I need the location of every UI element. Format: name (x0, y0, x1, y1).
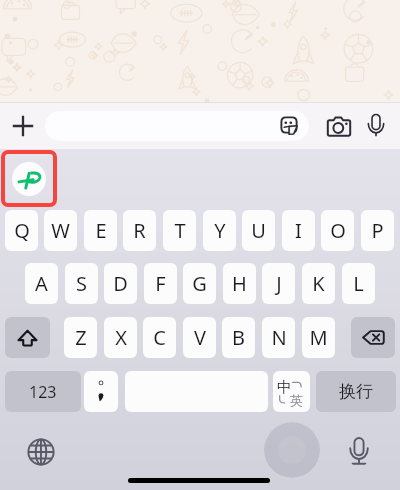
button[interactable]: W (44, 210, 77, 251)
staticText: Y (214, 217, 226, 244)
button[interactable]: T (163, 210, 196, 251)
staticText: F (155, 270, 166, 297)
button[interactable]: C (143, 317, 176, 358)
button[interactable]: J (262, 263, 295, 304)
staticText: 换行 (339, 381, 373, 402)
button[interactable]: L (342, 263, 375, 304)
button[interactable]: Input method (1, 150, 57, 207)
button[interactable]: P (361, 210, 394, 251)
button[interactable]: V (183, 317, 216, 358)
button[interactable]: Camera (323, 111, 355, 143)
button[interactable]: B (222, 317, 255, 358)
button[interactable]: Voice input (343, 434, 375, 466)
staticText: J (276, 270, 282, 297)
button[interactable]: Switch Chinese English (273, 371, 310, 412)
button[interactable]: O (321, 210, 354, 251)
button[interactable]: M (302, 317, 335, 358)
button[interactable]: G (183, 263, 216, 304)
button[interactable]: A (25, 263, 58, 304)
staticText: I (295, 217, 302, 244)
button[interactable]: Handwriting (264, 422, 320, 478)
staticText: P (371, 217, 384, 244)
staticText: 123 (29, 381, 57, 403)
staticText: V (194, 324, 206, 351)
button[interactable]: N (262, 317, 295, 358)
button[interactable]: Switch keyboard language (25, 436, 57, 468)
button[interactable]: Q (5, 210, 38, 251)
staticText: W (51, 217, 70, 244)
staticText: E (95, 217, 107, 244)
staticText: T (174, 217, 186, 244)
button[interactable]: Backspace (351, 317, 395, 358)
staticText: L (353, 270, 364, 297)
button[interactable]: Shift (5, 317, 50, 358)
button[interactable]: D (104, 263, 137, 304)
button[interactable]: U (242, 210, 275, 251)
button[interactable]: R (123, 210, 156, 251)
staticText: 英 (290, 392, 303, 408)
staticText: S (76, 270, 87, 297)
staticText: C (153, 324, 166, 351)
staticText: O (330, 217, 346, 244)
button[interactable]: S (65, 263, 98, 304)
staticText: Q (14, 217, 30, 244)
button[interactable]: E (84, 210, 117, 251)
button[interactable]: I (282, 210, 315, 251)
staticText: A (35, 270, 48, 297)
button[interactable]: F (144, 263, 177, 304)
staticText: H (232, 270, 247, 297)
staticText: X (115, 324, 127, 351)
staticText: D (113, 270, 128, 297)
button[interactable]: Message (45, 111, 309, 141)
staticText: Z (75, 324, 87, 351)
button[interactable]: Punctuation (84, 371, 118, 412)
button[interactable]: X (104, 317, 137, 358)
staticText: U (251, 217, 266, 244)
staticText: R (133, 217, 146, 244)
button[interactable]: K (302, 263, 335, 304)
button[interactable]: 换行 (316, 371, 396, 412)
staticText: B (232, 324, 245, 351)
staticText: N (271, 324, 287, 351)
button[interactable]: H (223, 263, 256, 304)
button[interactable]: Stickers (273, 109, 305, 141)
button[interactable]: 123 (5, 371, 81, 412)
staticText: M (309, 324, 328, 351)
button[interactable]: Voice message (362, 111, 390, 139)
button[interactable]: Z (64, 317, 97, 358)
button[interactable]: Y (203, 210, 236, 251)
staticText: K (312, 270, 325, 297)
staticText: G (192, 270, 207, 297)
staticText: 中 (277, 378, 292, 397)
button[interactable]: Attach (6, 109, 40, 143)
